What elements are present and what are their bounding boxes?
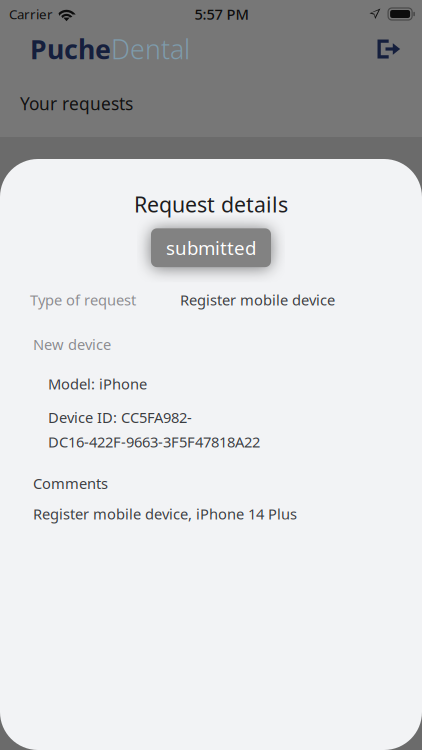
staticText: submitted — [166, 235, 256, 260]
staticText: Carrier — [9, 5, 53, 23]
staticText: DC16-422F-9663-3F5F47818A22 — [48, 432, 260, 451]
staticText: Comments — [33, 473, 108, 493]
button[interactable]: Sign out — [367, 27, 411, 71]
staticText: Request details — [134, 190, 288, 218]
staticText: Puche — [30, 31, 111, 67]
staticText: New device — [33, 335, 111, 354]
staticText: 5:57 PM — [194, 4, 248, 24]
staticText: Your requests — [20, 92, 133, 115]
staticText: Model: iPhone — [48, 374, 147, 394]
staticText: Register mobile device, iPhone 14 Plus — [33, 504, 297, 523]
staticText: Register mobile device — [180, 290, 335, 310]
staticText: Dental — [111, 31, 190, 67]
staticText: Type of request — [30, 290, 136, 310]
staticText: Device ID: CC5FA982- — [48, 408, 192, 427]
